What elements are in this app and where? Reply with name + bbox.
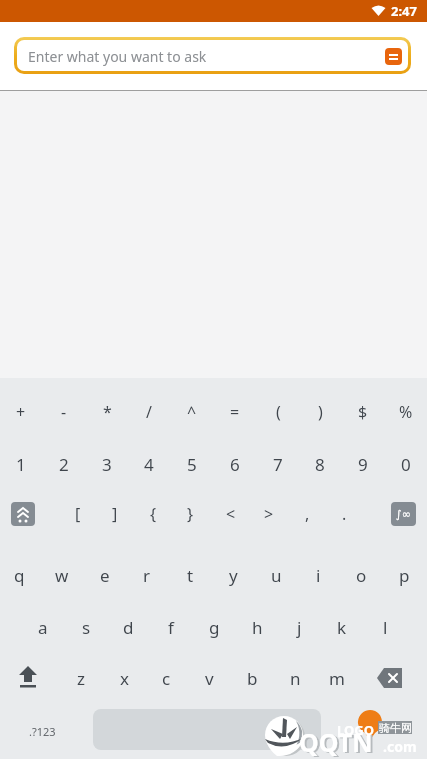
button[interactable]: - (43, 392, 85, 432)
button[interactable]: 1 (0, 444, 42, 484)
button[interactable]: d (107, 607, 149, 647)
button[interactable]: z (60, 658, 102, 698)
staticText: h (252, 616, 263, 639)
staticText: ^ (187, 401, 197, 423)
button[interactable]: b (231, 658, 273, 698)
button[interactable]: i (297, 555, 339, 595)
button[interactable]: { (132, 494, 174, 534)
staticText: r (143, 564, 151, 587)
button[interactable]: y (212, 555, 254, 595)
button[interactable]: ^ (171, 392, 213, 432)
staticText: ] (112, 503, 118, 525)
button[interactable]: p (383, 555, 425, 595)
staticText: = (230, 401, 240, 423)
button[interactable]: o (340, 555, 382, 595)
staticText: v (205, 667, 214, 690)
staticText: , (305, 503, 310, 525)
button[interactable]: * (86, 392, 128, 432)
button[interactable]: n (274, 658, 316, 698)
staticText: < (226, 503, 236, 525)
staticText: b (247, 667, 258, 690)
staticText: g (209, 616, 220, 639)
staticText: 1 (16, 453, 26, 476)
button[interactable]: l (364, 607, 406, 647)
staticText: q (14, 564, 25, 587)
button[interactable]: 4 (128, 444, 170, 484)
staticText: f (168, 616, 174, 639)
button[interactable]: > (248, 494, 290, 534)
button[interactable]: u (255, 555, 297, 595)
button[interactable]: Enter what you want to ask (14, 37, 411, 74)
button[interactable]: 8 (299, 444, 341, 484)
button[interactable]: ) (299, 392, 341, 432)
button[interactable]: 5 (171, 444, 213, 484)
button[interactable]: .?123 (12, 713, 72, 749)
button[interactable]: t (169, 555, 211, 595)
button[interactable]: e (84, 555, 126, 595)
button[interactable]: a (22, 607, 64, 647)
staticText: 6 (230, 453, 240, 476)
button[interactable]: k (321, 607, 363, 647)
button[interactable]: ] (94, 494, 136, 534)
button[interactable]: < (210, 494, 252, 534)
staticText: w (55, 564, 69, 587)
staticText: o (356, 564, 367, 587)
staticText: .com (383, 737, 417, 756)
staticText: u (271, 564, 282, 587)
button[interactable]: 3 (86, 444, 128, 484)
button[interactable]: h (236, 607, 278, 647)
staticText: % (399, 401, 413, 423)
staticText: + (16, 401, 26, 423)
staticText: e (100, 564, 110, 587)
staticText: l (383, 616, 388, 639)
button[interactable]: j (278, 607, 320, 647)
button[interactable]: g (193, 607, 235, 647)
button[interactable]: 6 (214, 444, 256, 484)
button[interactable]: 0 (385, 444, 427, 484)
button[interactable]: c (145, 658, 187, 698)
button[interactable] (93, 709, 321, 750)
button[interactable]: ( (257, 392, 299, 432)
staticText: 骑牛网 (379, 721, 412, 735)
button[interactable]: r (126, 555, 168, 595)
staticText: d (123, 616, 134, 639)
button[interactable]: } (169, 494, 211, 534)
staticText: p (399, 564, 410, 587)
staticText: c (162, 667, 171, 690)
button[interactable]: + (0, 392, 42, 432)
button[interactable]: x (103, 658, 145, 698)
button[interactable]: 9 (342, 444, 384, 484)
button[interactable]: m (316, 658, 358, 698)
button[interactable]: s (65, 607, 107, 647)
button[interactable]: [ (57, 494, 99, 534)
button[interactable]: w (41, 555, 83, 595)
staticText: 3 (102, 453, 112, 476)
staticText: / (146, 401, 152, 423)
staticText: z (77, 667, 85, 690)
staticText: j (297, 616, 302, 639)
button[interactable] (370, 662, 410, 694)
button[interactable]: $ (342, 392, 384, 432)
button[interactable]: f (150, 607, 192, 647)
button[interactable]: % (385, 392, 427, 432)
button[interactable] (8, 662, 48, 694)
staticText: 9 (358, 453, 368, 476)
button[interactable] (11, 502, 35, 526)
staticText: Enter what you want to ask (28, 47, 207, 66)
button[interactable]: q (0, 555, 40, 595)
staticText: 8 (315, 453, 325, 476)
button[interactable]: ∫∞ (391, 502, 416, 526)
staticText: a (38, 616, 48, 639)
staticText: { (150, 503, 157, 525)
staticText: 4 (144, 453, 154, 476)
button[interactable]: . (323, 494, 365, 534)
button[interactable]: / (128, 392, 170, 432)
staticText: QQTN (301, 726, 375, 759)
button[interactable]: 7 (257, 444, 299, 484)
staticText: t (187, 564, 194, 587)
button[interactable]: = (214, 392, 256, 432)
button[interactable]: v (188, 658, 230, 698)
staticText: 2 (59, 453, 69, 476)
button[interactable]: 2 (43, 444, 85, 484)
button[interactable]: , (286, 494, 328, 534)
